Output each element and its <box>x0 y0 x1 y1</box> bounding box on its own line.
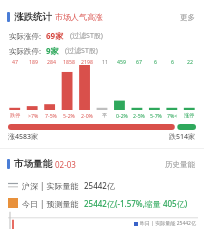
staticText: 沪深 | 实际量能 <box>22 180 79 191</box>
staticText: 市场人气高涨 <box>55 12 103 22</box>
staticText: 7-5% <box>45 112 57 119</box>
staticText: 5-2% <box>63 112 75 119</box>
staticText: 更多 <box>180 13 195 22</box>
staticText: 284 <box>47 58 56 65</box>
button[interactable]: 更多 <box>178 11 197 24</box>
staticText: 67 <box>136 58 142 65</box>
staticText: (过滤ST股) <box>65 46 98 56</box>
staticText: 实际涨停: <box>9 31 42 41</box>
staticText: 1858 <box>63 58 75 65</box>
staticText: 平 <box>102 112 108 119</box>
staticText: 69家 <box>46 30 64 41</box>
staticText: 实际跌停: <box>9 46 42 56</box>
staticText: 0-2% <box>116 112 128 119</box>
staticText: 昨日 | 实际量能 25442亿 <box>140 220 196 227</box>
staticText: 历史量能 <box>165 160 195 169</box>
staticText: 5-7% <box>150 112 162 119</box>
staticText: 7%< <box>167 112 178 119</box>
staticText: 跌停 <box>10 112 21 119</box>
staticText: 25442亿(-1.57%,缩量 405亿) <box>84 198 188 209</box>
staticText: 11 <box>102 58 108 65</box>
staticText: 6 <box>171 58 174 65</box>
staticText: 25442亿 <box>84 180 115 191</box>
staticText: 涨4583家 <box>8 132 39 142</box>
staticText: 2-0% <box>81 112 93 119</box>
staticText: (过滤ST股) <box>70 31 103 41</box>
staticText: 涨跌统计 <box>14 11 52 23</box>
button[interactable]: 历史量能 <box>163 158 197 171</box>
staticText: 涨停 <box>184 112 195 119</box>
button[interactable]: 今日 | 预测量能 <box>0 196 204 210</box>
staticText: 2198 <box>81 58 93 65</box>
staticText: >7% <box>28 112 39 119</box>
staticText: 跌514家 <box>169 132 196 142</box>
staticText: 2-5% <box>133 112 145 119</box>
staticText: 今日 | 预测量能 <box>22 198 79 209</box>
staticText: 02-03 <box>55 159 76 170</box>
staticText: 47 <box>12 58 18 65</box>
staticText: 22 <box>187 58 193 65</box>
staticText: 459 <box>117 58 126 65</box>
staticText: 189 <box>29 58 38 65</box>
staticText: 市场量能 <box>14 158 52 170</box>
staticText: 9家 <box>46 45 59 56</box>
button[interactable]: 沪深 | 实际量能 <box>0 178 204 192</box>
staticText: 6 <box>154 58 157 65</box>
